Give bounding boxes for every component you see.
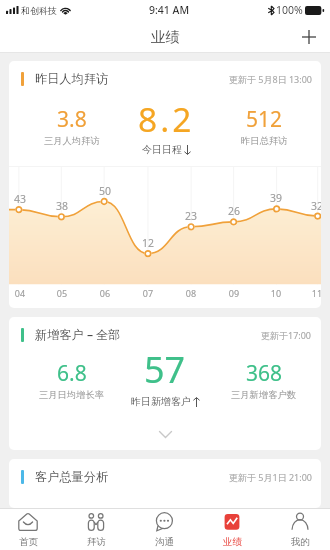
staticText: 50 xyxy=(96,184,114,198)
staticText: 57 xyxy=(144,345,186,394)
staticText: 8.2 xyxy=(138,96,195,142)
staticText: 32 xyxy=(308,199,321,213)
staticText: 04 xyxy=(11,287,29,299)
staticText: 今日日程 xyxy=(142,143,182,156)
staticText: 09 xyxy=(225,287,243,299)
staticText: 23 xyxy=(182,209,200,223)
staticText: 沟通 xyxy=(155,536,174,548)
button[interactable]: 客户总量分析 xyxy=(9,459,321,508)
staticText: 05 xyxy=(53,287,71,299)
staticText: 和创科技 xyxy=(21,5,57,16)
staticText: 新增客户 – 全部 xyxy=(35,326,121,343)
staticText: 业绩 xyxy=(223,536,242,548)
staticText: 我的 xyxy=(291,536,310,548)
button[interactable]: 沟通 xyxy=(131,509,197,550)
staticText: 43 xyxy=(11,192,29,206)
staticText: 6.8 xyxy=(57,359,87,388)
button[interactable]: 添加 xyxy=(296,24,322,50)
staticText: 更新于 5月8日 13:00 xyxy=(229,73,312,85)
staticText: 首页 xyxy=(19,536,38,548)
staticText: 08 xyxy=(182,287,200,299)
staticText: 12 xyxy=(139,236,157,250)
staticText: 昨日新增客户 xyxy=(131,395,191,408)
staticText: 06 xyxy=(96,287,114,299)
button[interactable]: 新增客户 – 全部 xyxy=(9,317,321,450)
button[interactable]: 首页 xyxy=(0,509,61,550)
staticText: 更新于17:00 xyxy=(261,329,312,341)
staticText: 100% xyxy=(276,3,303,17)
staticText: 07 xyxy=(139,287,157,299)
staticText: 39 xyxy=(267,191,285,205)
staticText: 3.8 xyxy=(57,105,87,134)
staticText: 512 xyxy=(246,105,283,134)
button[interactable]: 我的 xyxy=(267,509,330,550)
staticText: 业绩 xyxy=(151,28,180,46)
staticText: 10 xyxy=(267,287,285,299)
staticText: 368 xyxy=(246,359,283,388)
staticText: 三月新增客户数 xyxy=(231,389,297,401)
staticText: 昨日总拜访 xyxy=(241,135,288,147)
staticText: 9:41 AM xyxy=(149,3,190,17)
staticText: 昨日人均拜访 xyxy=(35,71,109,86)
button[interactable]: 业绩 xyxy=(199,509,265,550)
staticText: 拜访 xyxy=(87,536,106,548)
staticText: 38 xyxy=(53,199,71,213)
staticText: 更新于 5月1日 21:00 xyxy=(229,471,312,483)
staticText: 三月日均增长率 xyxy=(39,389,105,401)
staticText: 客户总量分析 xyxy=(35,469,109,484)
button[interactable]: 拜访 xyxy=(63,509,129,550)
staticText: 三月人均拜访 xyxy=(44,135,100,147)
staticText: 11 xyxy=(308,287,321,299)
staticText: 26 xyxy=(225,204,243,218)
button[interactable]: 昨日人均拜访 xyxy=(9,61,321,308)
